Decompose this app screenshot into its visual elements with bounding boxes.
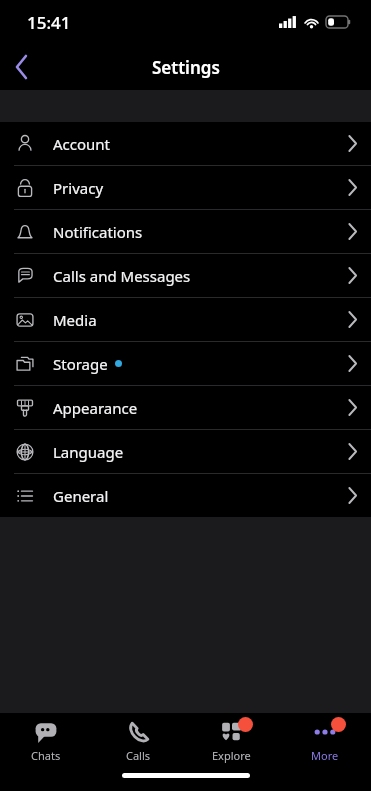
button[interactable]: Chats (0, 713, 92, 769)
staticText: Storage (53, 354, 108, 374)
button[interactable]: Explore (185, 713, 278, 769)
button[interactable]: Notifications (0, 210, 371, 253)
staticText: Explore (212, 748, 251, 763)
staticText: Calls and Messages (53, 266, 191, 286)
button[interactable]: General (0, 474, 371, 517)
button[interactable]: Media (0, 298, 371, 341)
staticText: Calls (126, 748, 151, 763)
button[interactable]: Calls (92, 713, 185, 769)
staticText: Privacy (53, 178, 104, 198)
button[interactable]: Account (0, 122, 371, 165)
button[interactable]: Calls and Messages (0, 254, 371, 297)
staticText: Account (53, 134, 111, 154)
button[interactable]: Appearance (0, 386, 371, 429)
staticText: Settings (152, 56, 220, 79)
button[interactable]: Privacy (0, 166, 371, 209)
staticText: Notifications (53, 222, 143, 242)
button[interactable]: More (278, 713, 371, 769)
button[interactable]: Language (0, 430, 371, 473)
staticText: Chats (31, 748, 61, 763)
button[interactable]: Storage (0, 342, 371, 385)
staticText: More (311, 748, 339, 763)
staticText: Language (53, 442, 124, 462)
staticText: General (53, 486, 109, 506)
staticText: Media (53, 310, 97, 330)
button[interactable]: Back (0, 45, 44, 89)
staticText: Appearance (53, 398, 138, 418)
staticText: 15:41 (27, 11, 71, 34)
